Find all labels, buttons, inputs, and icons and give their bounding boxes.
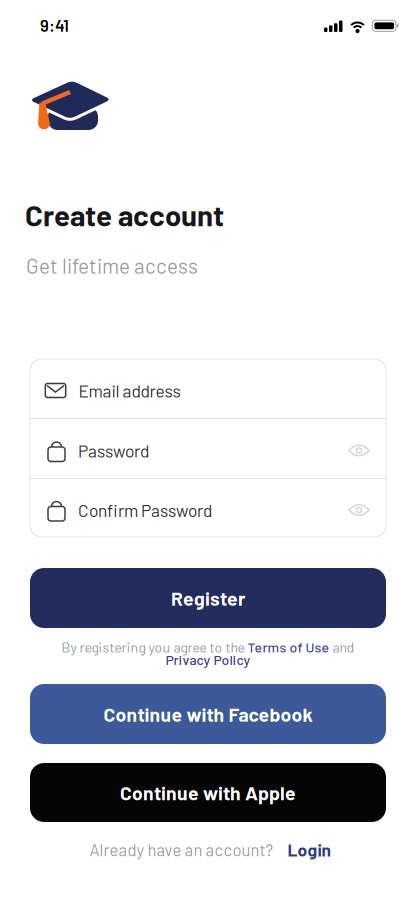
staticText: By registering you agree to the	[61, 639, 247, 655]
staticText: Password	[78, 440, 149, 461]
staticText: Confirm Password	[78, 500, 212, 520]
button[interactable]: Email address	[30, 359, 386, 418]
staticText: Already have an account?	[89, 839, 273, 859]
staticText: and	[329, 639, 354, 655]
button[interactable]: Password	[30, 419, 386, 478]
staticText: Terms of Use	[247, 639, 329, 655]
button[interactable]: Show Password	[348, 444, 370, 456]
staticText: Get lifetime access	[26, 253, 198, 278]
button[interactable]: Register	[30, 568, 386, 628]
staticText: Continue with Apple	[120, 781, 296, 804]
staticText: Login	[287, 839, 330, 860]
button[interactable]: Continue with Facebook	[30, 684, 386, 744]
button[interactable]: Show Confirm Password	[348, 504, 370, 516]
staticText: Privacy Policy	[165, 651, 250, 668]
button[interactable]: Continue with Apple	[30, 763, 386, 822]
staticText: Register	[171, 586, 245, 610]
staticText: Continue with Facebook	[103, 702, 312, 726]
staticText: Create account	[25, 197, 224, 232]
staticText: Email address	[78, 380, 180, 401]
button[interactable]: Privacy Policy	[165, 651, 250, 668]
staticText: 9:41	[40, 15, 69, 35]
button[interactable]: Terms of Use	[247, 639, 329, 655]
button[interactable]: Confirm Password	[30, 479, 386, 537]
button[interactable]: Login	[287, 839, 330, 860]
